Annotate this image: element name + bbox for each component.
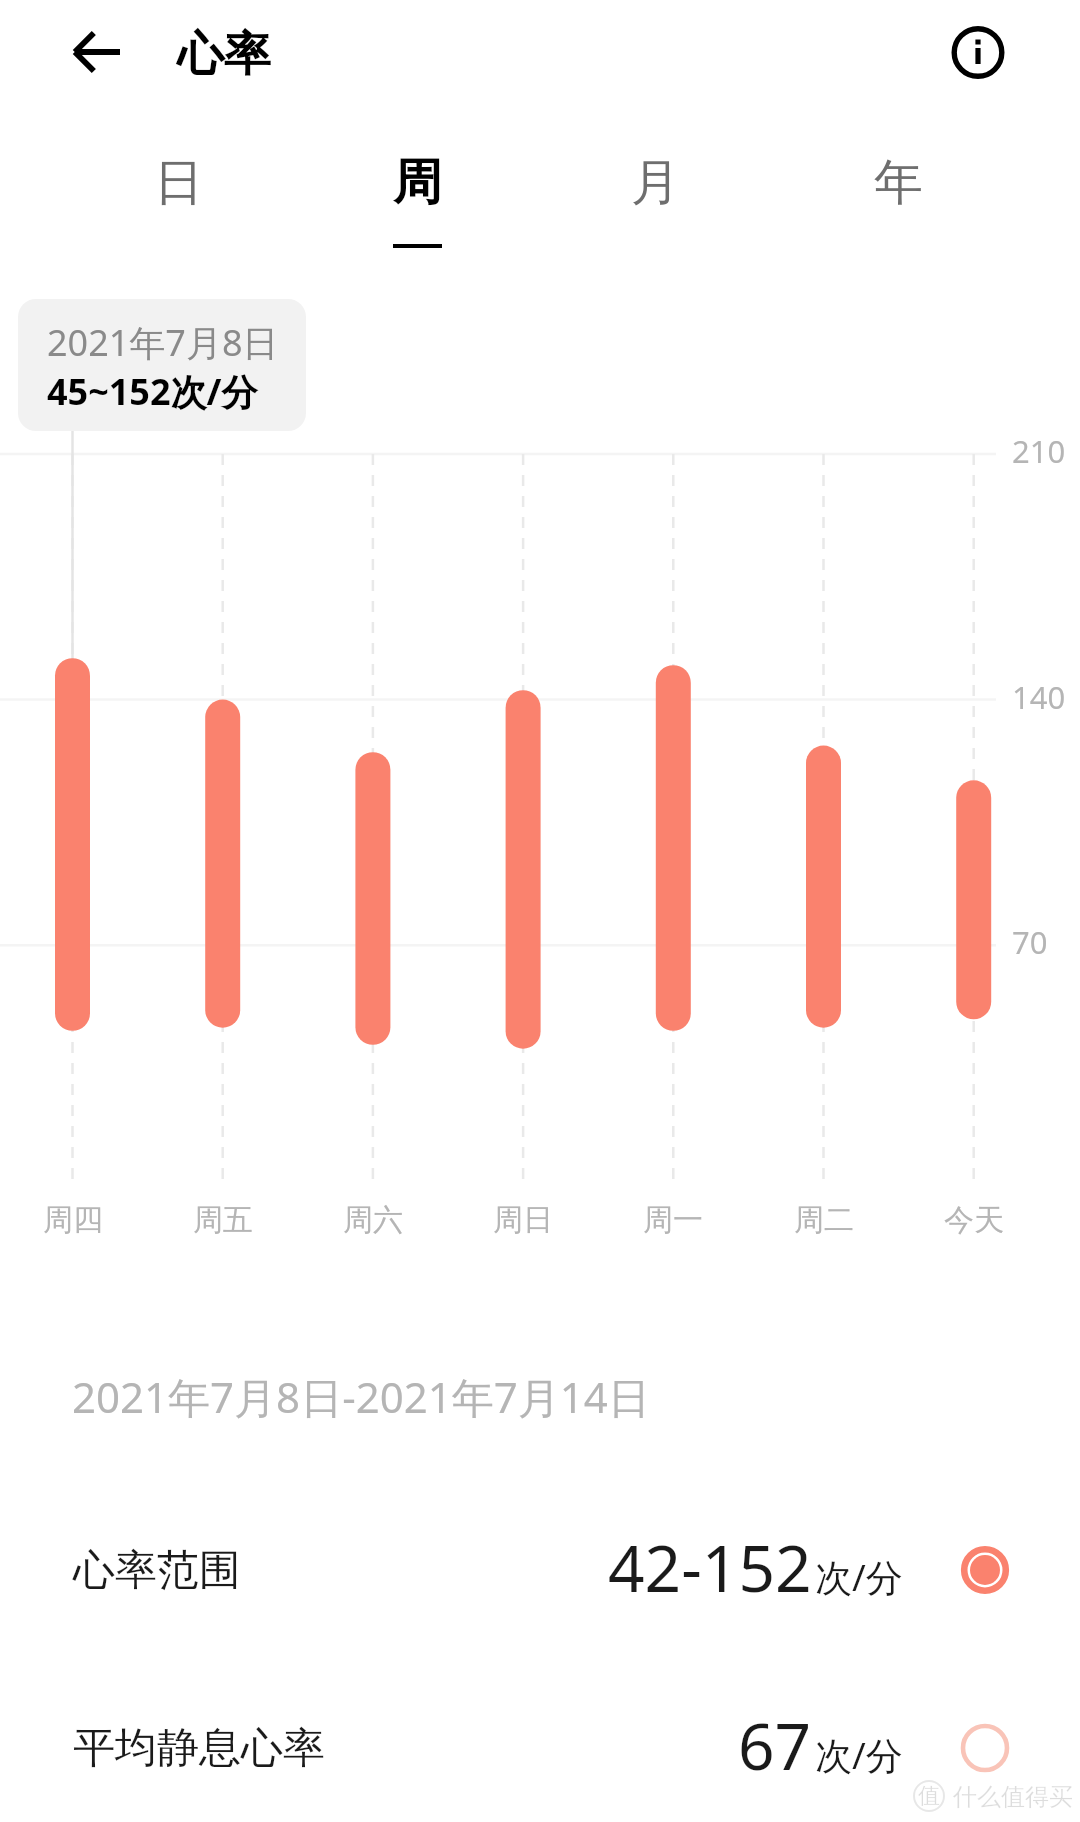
button[interactable]: 周 [347,133,487,261]
staticText: 平均静息心率 [73,1722,325,1775]
staticText: 周 [393,152,442,214]
staticText: 次/分 [815,1551,903,1602]
staticText: 年 [874,152,923,214]
staticText: 周二 [794,1201,854,1239]
staticText: 周一 [643,1201,703,1239]
staticText: 次/分 [815,1729,903,1780]
staticText: 2021年7月8日 [47,318,279,367]
staticText: 67 [738,1702,812,1789]
staticText: 什么值得买 [953,1782,1073,1812]
button[interactable]: Back [60,16,132,88]
staticText: 140 [1012,676,1066,718]
staticText: 值 [918,1782,940,1810]
button[interactable]: 日 [108,133,248,261]
staticText: 周五 [193,1201,253,1239]
staticText: 日 [154,152,203,214]
staticText: 2021年7月8日-2021年7月14日 [72,1368,650,1425]
staticText: 70 [1012,921,1048,963]
staticText: 周六 [343,1201,403,1239]
staticText: 周四 [43,1201,103,1239]
button[interactable]: 心率范围 [0,1523,1080,1617]
staticText: 45~152次/分 [47,367,258,416]
staticText: 210 [1012,430,1066,472]
staticText: 42-152 [608,1524,812,1611]
button[interactable]: 年 [828,133,968,261]
staticText: 心率 [177,25,271,84]
staticText: 今天 [944,1201,1004,1239]
staticText: 周日 [493,1201,553,1239]
button[interactable]: 月 [585,133,725,261]
staticText: 心率范围 [73,1544,241,1597]
button[interactable]: 平均静息心率 [0,1701,1080,1795]
button[interactable]: Info [942,16,1014,88]
staticText: 月 [631,152,680,214]
